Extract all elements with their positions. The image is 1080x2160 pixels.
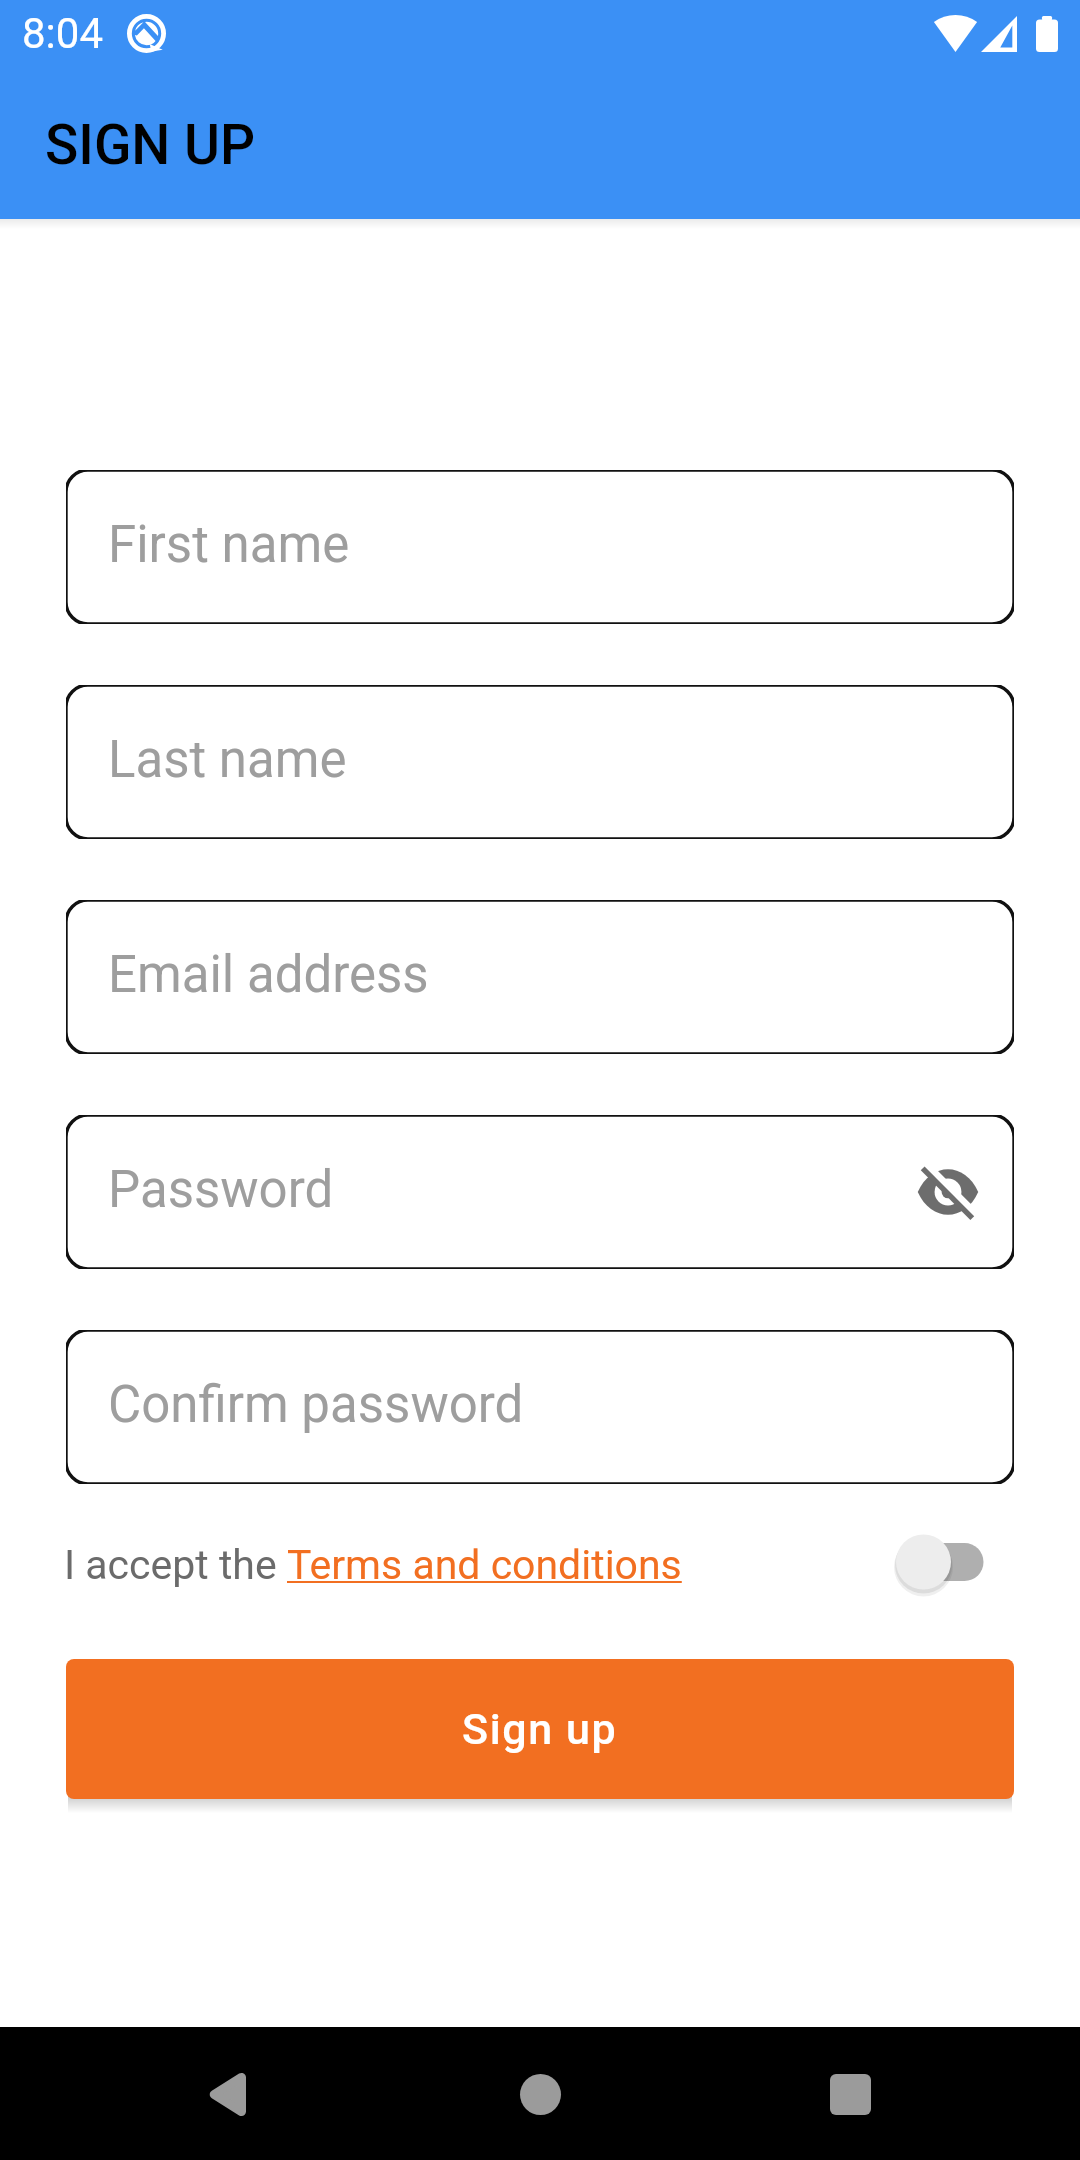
button[interactable]: Last name [66, 685, 1014, 839]
button[interactable]: First name [66, 470, 1014, 624]
button[interactable]: Confirm password [66, 1330, 1014, 1484]
button[interactable]: Password [66, 1115, 1014, 1269]
button[interactable]: Accept terms [896, 1520, 1000, 1604]
staticText: Last name [108, 730, 347, 790]
staticText: Sign up [462, 1704, 618, 1754]
button[interactable]: Home [480, 2034, 600, 2154]
button[interactable]: Show password [906, 1150, 990, 1234]
staticText: I accept the [64, 1541, 287, 1589]
staticText: Terms and conditions [287, 1541, 682, 1589]
staticText: SIGN UP [45, 113, 256, 177]
button[interactable]: Recent apps [790, 2034, 910, 2154]
button[interactable]: I accept the [64, 1541, 682, 1589]
staticText: 8:04 [22, 9, 103, 58]
button[interactable]: Sign up [66, 1659, 1014, 1799]
staticText: First name [108, 515, 350, 575]
staticText: Confirm password [108, 1375, 524, 1435]
staticText: Email address [108, 945, 429, 1005]
button[interactable]: Email address [66, 900, 1014, 1054]
button[interactable]: Back [166, 2034, 286, 2154]
staticText: Password [108, 1160, 334, 1220]
